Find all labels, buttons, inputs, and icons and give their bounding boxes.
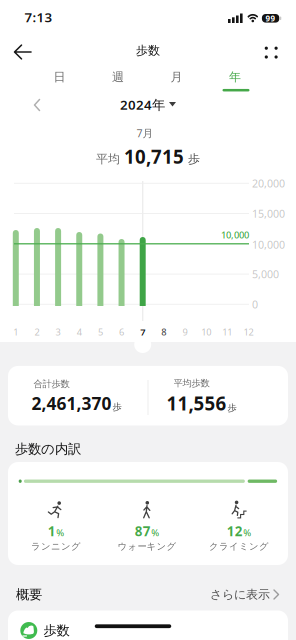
staticText: 7 <box>140 326 145 338</box>
staticText: 8 <box>161 326 166 338</box>
staticText: 1 <box>13 326 18 338</box>
staticText: 20,000 <box>252 176 285 190</box>
staticText: 3 <box>56 326 61 338</box>
staticText: 7月 <box>136 126 153 140</box>
staticText: 11 <box>222 326 232 338</box>
button[interactable]: 月 <box>148 65 204 89</box>
staticText: % <box>151 526 159 539</box>
staticText: 歩数の内訳 <box>15 441 81 457</box>
staticText: 10,000 <box>252 237 285 252</box>
staticText: 歩数 <box>136 43 160 58</box>
staticText: 6 <box>119 326 124 338</box>
staticText: 10,000 <box>221 229 249 241</box>
staticText: 合計歩数 <box>33 378 69 390</box>
staticText: 12 <box>227 522 243 540</box>
staticText: 4 <box>77 326 82 338</box>
staticText: 2,461,370 <box>31 392 111 415</box>
staticText: 歩 <box>188 152 200 166</box>
button[interactable]: さらに表示 <box>210 587 280 602</box>
staticText: ランニング <box>31 541 81 552</box>
staticText: 11,556 <box>166 391 226 416</box>
staticText: 12 <box>243 326 253 338</box>
staticText: 5,000 <box>252 267 279 281</box>
staticText: 月 <box>170 70 182 84</box>
button[interactable]: 2024年 <box>120 96 176 113</box>
staticText: % <box>56 526 64 539</box>
staticText: 歩 <box>112 401 121 413</box>
button[interactable]: 週 <box>90 65 146 89</box>
button[interactable]: 日 <box>31 65 87 89</box>
staticText: 9 <box>182 326 187 338</box>
button[interactable]: Back <box>5 35 37 67</box>
staticText: 10,715 <box>124 144 184 169</box>
staticText: 7:13 <box>24 8 52 26</box>
staticText: 平均歩数 <box>173 377 209 389</box>
staticText: 99 <box>266 13 276 24</box>
staticText: 歩数 <box>43 622 69 639</box>
button[interactable]: Previous year <box>31 97 43 113</box>
staticText: 週 <box>112 70 124 84</box>
button[interactable]: More options <box>257 38 285 66</box>
staticText: 2024年 <box>120 96 165 113</box>
button[interactable]: 歩数 <box>8 610 288 640</box>
staticText: 概要 <box>16 586 42 603</box>
staticText: 15,000 <box>252 206 285 221</box>
staticText: 10 <box>201 326 211 338</box>
staticText: 2 <box>34 326 39 338</box>
staticText: % <box>243 526 251 539</box>
staticText: 日 <box>53 70 65 84</box>
button[interactable]: 年 <box>207 65 263 89</box>
staticText: 1 <box>48 522 56 540</box>
staticText: ウォーキング <box>117 541 176 552</box>
staticText: 平均 <box>96 152 120 166</box>
staticText: 87 <box>135 522 151 540</box>
staticText: 年 <box>229 70 241 84</box>
staticText: クライミング <box>209 541 269 552</box>
staticText: 歩 <box>227 402 236 414</box>
staticText: さらに表示 <box>210 587 270 602</box>
staticText: 5 <box>98 326 103 338</box>
staticText: 0 <box>252 297 258 311</box>
